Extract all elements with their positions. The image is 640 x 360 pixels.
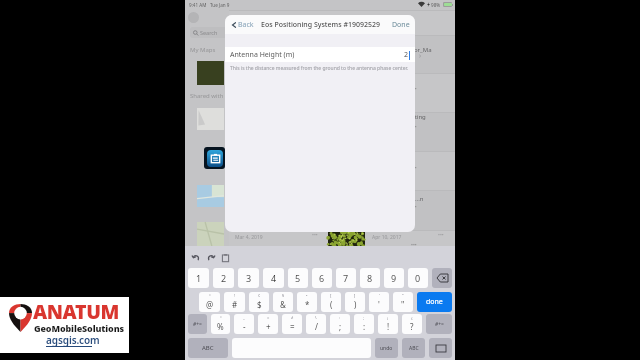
button[interactable]: Delete (432, 268, 452, 288)
staticText: 2 (404, 50, 409, 60)
button[interactable]: ABC (188, 338, 228, 358)
button[interactable]: 2 (213, 268, 234, 288)
staticText: My Maps (190, 46, 216, 54)
staticText: ••• (411, 86, 417, 93)
staticText: _ (243, 315, 245, 320)
staticText: 6 (319, 272, 325, 284)
staticText: 98% (431, 2, 441, 8)
staticText: Eos Positioning Systems #19092529 (261, 20, 380, 30)
staticText: ° (220, 315, 222, 320)
button[interactable]: ‘ (369, 292, 389, 312)
button[interactable]: 3 (238, 268, 259, 288)
staticText: ( (330, 299, 333, 310)
staticText: [ (330, 293, 332, 298)
button[interactable]: 4 (263, 268, 284, 288)
button[interactable]: ] (345, 292, 365, 312)
button[interactable]: 1 (188, 268, 209, 288)
button[interactable]: ¡ (378, 314, 398, 334)
staticText: ; (339, 321, 342, 332)
button[interactable]: Back (229, 18, 256, 32)
staticText: 2 (221, 272, 227, 284)
button[interactable]: 7 (336, 268, 356, 288)
staticText: ••• (411, 242, 417, 249)
button[interactable]: done (417, 292, 452, 312)
button[interactable]: Undo (191, 253, 200, 262)
staticText: = (290, 321, 295, 332)
staticText: done (426, 297, 443, 307)
button[interactable]: _ (234, 314, 254, 334)
staticText: ••• (411, 124, 417, 131)
staticText: ; (363, 315, 365, 320)
button[interactable]: ; (354, 314, 374, 334)
staticText: § (282, 293, 285, 298)
staticText: 1 (196, 272, 202, 284)
button[interactable]: ! (224, 292, 245, 312)
button[interactable]: Paste (221, 253, 230, 262)
button[interactable]: #+= (188, 314, 207, 334)
button[interactable]: 0 (408, 268, 428, 288)
button[interactable]: ≠ (282, 314, 302, 334)
button[interactable]: 9 (384, 268, 404, 288)
button[interactable]: ¿ (402, 314, 422, 334)
staticText: ] (354, 293, 356, 298)
staticText: “ (402, 293, 404, 298)
button[interactable]: undo (375, 338, 398, 358)
staticText: ! (234, 293, 236, 298)
staticText: ? (410, 321, 414, 332)
button[interactable]: 5 (288, 268, 308, 288)
staticText: ! (387, 321, 390, 332)
button[interactable]: Done (387, 17, 415, 33)
staticText: = (267, 315, 270, 320)
button[interactable]: 6 (312, 268, 332, 288)
button[interactable]: #+= (426, 314, 452, 334)
button[interactable]: 8 (360, 268, 380, 288)
button[interactable]: \ (306, 314, 326, 334)
staticText: ¡ (387, 315, 389, 320)
staticText: ° (209, 293, 211, 298)
staticText: This is the distance measured from the g… (230, 65, 409, 72)
staticText: - (243, 321, 246, 332)
staticText: ••• (411, 204, 417, 211)
staticText: 4 (271, 272, 277, 284)
button[interactable]: Hide keyboard (429, 338, 452, 358)
button[interactable]: § (273, 292, 293, 312)
button[interactable]: Redo (206, 253, 215, 262)
staticText: ABC (202, 344, 214, 352)
staticText: : (363, 321, 366, 332)
staticText: ANATUM (33, 298, 119, 325)
button[interactable]: ABC (402, 338, 425, 358)
button[interactable]: ° (199, 292, 220, 312)
staticText: ...tor_Ma (407, 46, 432, 54)
button[interactable]: • (297, 292, 317, 312)
button[interactable]: Search (190, 27, 230, 38)
staticText: ••• (312, 232, 318, 239)
button[interactable]: [ (321, 292, 341, 312)
staticText: 5 (295, 272, 301, 284)
staticText: ABC (409, 345, 419, 352)
staticText: " (401, 299, 405, 310)
button[interactable]: Account (188, 12, 199, 23)
button[interactable]: = (258, 314, 278, 334)
button[interactable]: Anatum GeoMobile Solutions (0, 297, 129, 353)
staticText: # (232, 299, 238, 310)
staticText: Shared with (190, 92, 224, 100)
button[interactable]: ¢ (249, 292, 269, 312)
staticText: ) (354, 299, 357, 310)
button[interactable]: Eos Tools app (204, 147, 225, 169)
staticText: Apr 10, 2017 (372, 234, 402, 241)
staticText: 0 (415, 272, 421, 284)
button[interactable]: Antenna Height (m) (225, 47, 415, 62)
button[interactable]: ° (211, 314, 230, 334)
staticText: + (266, 321, 271, 332)
staticText: GeoMobileSolutions (34, 322, 124, 334)
staticText: * (305, 299, 310, 310)
staticText: Antenna Height (m) (230, 50, 295, 60)
staticText: ' (378, 299, 380, 310)
button[interactable]: “ (393, 292, 413, 312)
staticText: \ (315, 315, 317, 320)
button[interactable]: : (330, 314, 350, 334)
staticText: / (315, 321, 318, 332)
staticText: Mar 4, 2019 (235, 234, 263, 241)
